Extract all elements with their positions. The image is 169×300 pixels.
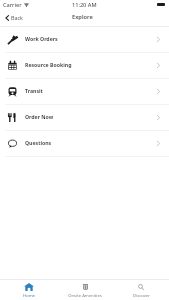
staticText: Resource Booking <box>25 61 72 68</box>
button[interactable]: Onsite Amenities <box>57 281 113 300</box>
staticText: Questions <box>25 139 52 146</box>
staticText: Back <box>11 14 23 21</box>
button[interactable]: Transit <box>0 79 169 105</box>
staticText: Explore <box>72 13 93 21</box>
staticText: 11:20 AM <box>72 1 97 9</box>
staticText: Discover <box>133 293 150 299</box>
staticText: Carrier <box>3 1 22 9</box>
staticText: Order Now <box>25 113 54 120</box>
button[interactable]: Resource Booking <box>0 53 169 79</box>
staticText: Home <box>23 293 35 299</box>
staticText: Onsite Amenities <box>68 293 102 299</box>
button[interactable]: Work Orders <box>0 27 169 53</box>
button[interactable]: Back <box>5 9 23 25</box>
staticText: Transit <box>25 87 43 94</box>
button[interactable]: Home <box>0 281 57 300</box>
button[interactable]: Order Now <box>0 105 169 131</box>
button[interactable]: Questions <box>0 131 169 157</box>
staticText: Work Orders <box>25 35 58 42</box>
button[interactable]: Discover <box>113 281 169 300</box>
